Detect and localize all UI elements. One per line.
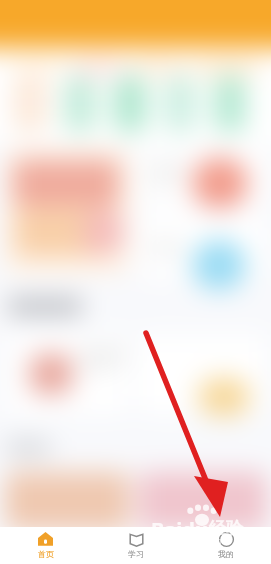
- button[interactable]: 我的: [181, 527, 271, 564]
- staticText: 经验: [209, 518, 243, 539]
- staticText: jingyan.baidu.com: [155, 535, 225, 546]
- staticText: 首页: [38, 549, 54, 559]
- staticText: 学习: [128, 549, 144, 559]
- button[interactable]: 首页: [0, 527, 91, 564]
- staticText: Baidu: [151, 516, 208, 543]
- staticText: 我的: [218, 549, 234, 559]
- button[interactable]: 学习: [91, 527, 181, 564]
